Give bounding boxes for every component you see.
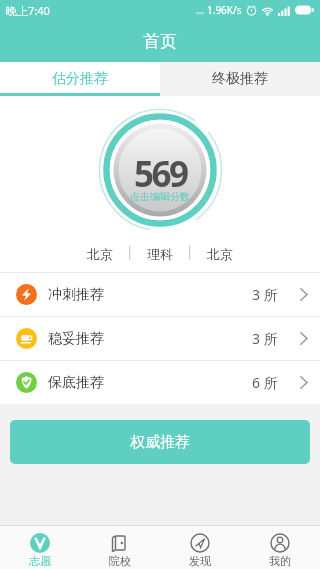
staticText: 北京 [87,246,113,262]
button[interactable]: 权威推荐 [10,420,310,464]
staticText: 终极推荐 [212,70,268,88]
staticText: │ [126,246,134,260]
staticText: 6 所 [252,373,278,392]
staticText: 569 [134,150,187,198]
staticText: │ [186,246,194,260]
staticText: 保底推荐 [48,374,104,392]
staticText: 院校 [109,554,131,568]
staticText: 3 所 [252,285,278,304]
button[interactable]: 志愿 [0,526,80,569]
staticText: 1.96K/s [207,3,242,17]
staticText: 晚上7:40 [6,3,50,18]
staticText: 北京 [207,246,233,262]
staticText: 志愿 [29,554,51,568]
staticText: 3 所 [252,329,278,348]
staticText: 冲刺推荐 [48,286,104,304]
button[interactable]: 终极推荐 [160,62,320,96]
button[interactable]: 我的 [240,526,320,569]
staticText: 首页 [143,31,177,52]
staticText: … [196,3,204,17]
button[interactable]: 保底推荐 [0,361,320,404]
staticText: 发现 [189,554,211,568]
button[interactable]: 569 [0,96,320,244]
staticText: 权威推荐 [130,433,190,452]
button[interactable]: 北京 [0,246,320,272]
staticText: 理科 [147,246,173,262]
staticText: 点击编辑分数 [130,190,190,203]
staticText: 估分推荐 [52,70,108,88]
staticText: 稳妥推荐 [48,330,104,348]
button[interactable]: 估分推荐 [0,62,160,96]
staticText: 我的 [269,554,291,568]
button[interactable]: 稳妥推荐 [0,317,320,360]
button[interactable]: 发现 [160,526,240,569]
button[interactable]: 冲刺推荐 [0,273,320,316]
button[interactable]: 院校 [80,526,160,569]
